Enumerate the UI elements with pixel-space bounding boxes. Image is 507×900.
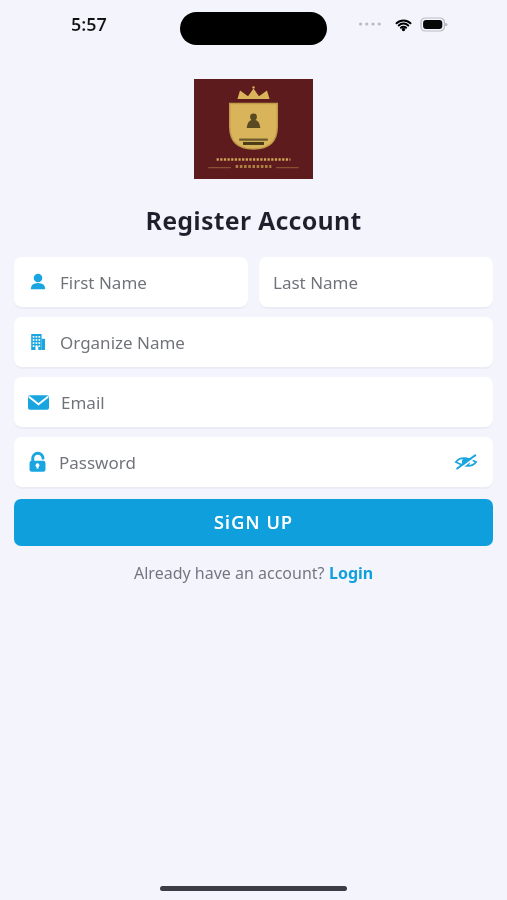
staticText: Email: [61, 391, 479, 414]
staticText: SiGN UP: [214, 510, 294, 535]
staticText: Organize Name: [60, 331, 479, 354]
button[interactable]: Email: [14, 377, 493, 427]
staticText: First Name: [60, 271, 234, 294]
button[interactable]: First Name: [14, 257, 248, 307]
staticText: Register Account: [0, 203, 507, 237]
button[interactable]: Organize Name: [14, 317, 493, 367]
button[interactable]: SiGN UP: [14, 499, 493, 546]
button[interactable]: Show password: [453, 449, 479, 475]
staticText: 5:57: [71, 12, 107, 37]
staticText: Last Name: [273, 271, 479, 294]
button[interactable]: Last Name: [259, 257, 493, 307]
staticText: Login: [329, 562, 374, 584]
staticText: Already have an account?: [134, 562, 329, 584]
staticText: Password: [59, 451, 453, 474]
button[interactable]: Login: [329, 562, 374, 584]
button[interactable]: Password: [14, 437, 493, 487]
